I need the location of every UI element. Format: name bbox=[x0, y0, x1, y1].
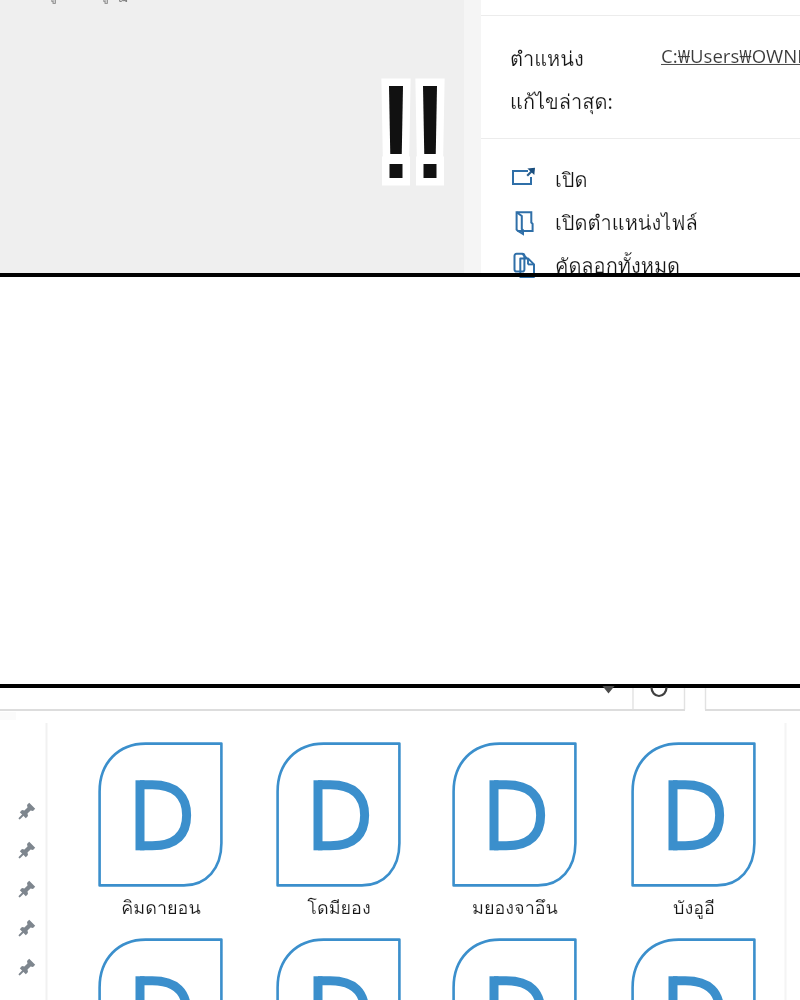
button[interactable]: เปิดตำแหน่งไฟล์ bbox=[481, 203, 800, 243]
button[interactable] bbox=[98, 938, 223, 1000]
staticText: มยองจาอึน bbox=[472, 893, 558, 922]
staticText: เปิด bbox=[555, 164, 588, 196]
staticText: แก้ไขล่าสุด: bbox=[510, 86, 613, 118]
staticText: ตำแหน่ง bbox=[510, 43, 584, 75]
button[interactable]: Pin item bbox=[14, 836, 40, 862]
button[interactable] bbox=[276, 938, 401, 1000]
button[interactable] bbox=[452, 938, 577, 1000]
button[interactable]: คัดลอกทั้งหมด bbox=[481, 246, 800, 286]
button[interactable] bbox=[631, 938, 756, 1000]
button[interactable]: เปิด bbox=[481, 160, 800, 200]
button[interactable] bbox=[631, 742, 756, 887]
button[interactable]: Pin item bbox=[14, 914, 40, 940]
staticText: โดมียอง bbox=[307, 893, 371, 922]
staticText: บังอูอี bbox=[673, 893, 715, 922]
button[interactable]: Pin item bbox=[14, 953, 40, 979]
staticText: คิมดายอน bbox=[121, 893, 201, 922]
staticText: เปิดตำแหน่งไฟล์ bbox=[555, 207, 698, 239]
staticText: คัดลอกทั้งหมด bbox=[555, 250, 681, 282]
staticText: ฯลฯ หมู่บ้าน ญู ฏคลิกขวาที่ไฟล์ที่ต้องกา… bbox=[4, 0, 345, 6]
button[interactable]: Pin item bbox=[14, 797, 40, 823]
button[interactable]: Pin item bbox=[14, 875, 40, 901]
staticText: C:₩Users₩OWNE bbox=[661, 43, 800, 68]
button[interactable] bbox=[452, 742, 577, 887]
button[interactable] bbox=[98, 742, 223, 887]
button[interactable] bbox=[276, 742, 401, 887]
